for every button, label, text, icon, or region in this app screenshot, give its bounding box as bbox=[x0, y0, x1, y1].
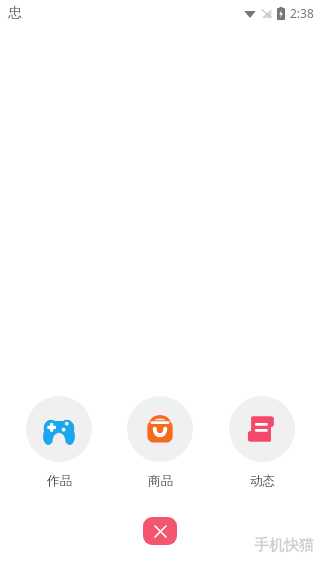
button[interactable]: Close bbox=[143, 517, 177, 545]
button[interactable]: 动态 bbox=[219, 396, 305, 489]
staticText: 忠 bbox=[8, 4, 22, 22]
staticText: 动态 bbox=[250, 473, 275, 489]
button[interactable]: 作品 bbox=[16, 396, 102, 489]
button[interactable]: 商品 bbox=[117, 396, 203, 489]
staticText: 作品 bbox=[47, 473, 72, 489]
staticText: 手机快猫 bbox=[254, 536, 314, 555]
staticText: 商品 bbox=[148, 473, 173, 489]
staticText: 2:38 bbox=[290, 5, 314, 21]
